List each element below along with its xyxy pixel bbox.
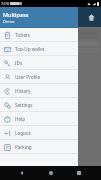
staticText: Help <box>15 116 26 122</box>
button[interactable]: Home <box>45 167 57 179</box>
staticText: Settings <box>15 102 33 108</box>
button[interactable]: Recents <box>73 167 85 179</box>
button[interactable]: History <box>0 84 78 97</box>
staticText: Multipass <box>3 11 29 18</box>
staticText: User Profile <box>15 74 41 80</box>
staticText: Top-Up wallet <box>15 46 45 52</box>
button[interactable]: Settings <box>0 98 78 111</box>
button[interactable]: Home <box>85 11 97 23</box>
staticText: History <box>15 88 31 94</box>
staticText: Demo <box>3 19 15 24</box>
staticText: Tickets <box>15 32 30 38</box>
staticText: IDs <box>15 60 23 66</box>
staticText: Logout <box>15 130 31 136</box>
button[interactable]: Top-Up wallet <box>0 42 78 55</box>
button[interactable]: Help <box>0 112 78 125</box>
button[interactable]: Parking <box>0 140 78 153</box>
button[interactable]: Tickets <box>0 28 78 41</box>
button[interactable]: Back <box>16 167 28 179</box>
button[interactable]: Logout <box>0 126 78 139</box>
staticText: 7:00 <box>1 1 9 6</box>
button[interactable]: Multipass <box>0 7 78 27</box>
button[interactable]: IDs <box>0 56 78 69</box>
staticText: Parking <box>15 144 32 150</box>
button[interactable]: User Profile <box>0 70 78 83</box>
